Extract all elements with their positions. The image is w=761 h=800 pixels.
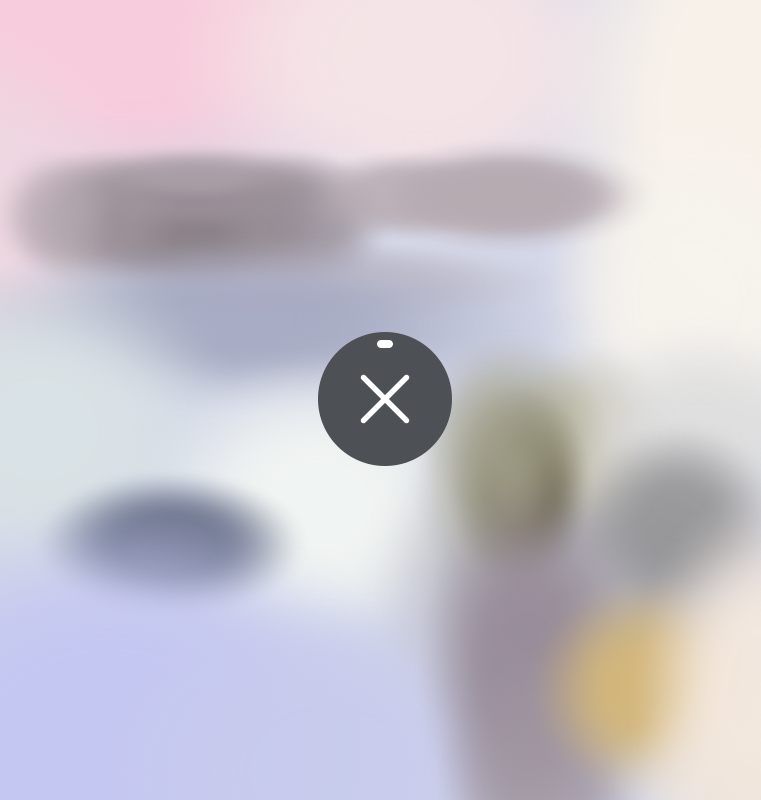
button[interactable]: Close — [318, 332, 452, 466]
